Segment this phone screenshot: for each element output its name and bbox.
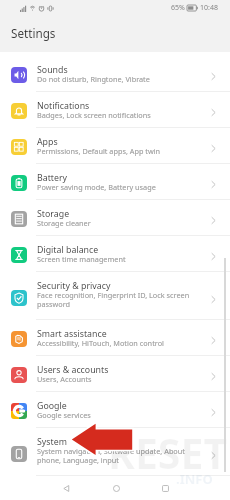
staticText: RESET — [108, 425, 228, 481]
staticText: Smart assistance — [37, 328, 107, 340]
button[interactable]: Back — [56, 478, 76, 498]
staticText: .INFO — [176, 470, 213, 488]
staticText: Notifications — [37, 100, 90, 112]
staticText: Do not disturb, Ringtone, Vibrate — [37, 74, 150, 84]
button[interactable]: Smart assistance — [0, 320, 230, 356]
button[interactable]: Home — [106, 478, 126, 498]
staticText: Security & privacy — [37, 280, 111, 292]
button[interactable]: Sounds — [0, 56, 230, 92]
staticText: 65% — [171, 3, 185, 13]
button[interactable]: Storage — [0, 200, 230, 236]
staticText: Screen time management — [37, 254, 126, 264]
button[interactable]: Security & privacy — [0, 272, 230, 320]
staticText: Accessibility, HiTouch, Motion control — [37, 338, 164, 348]
staticText: 10:48 — [200, 3, 218, 13]
staticText: Apps — [37, 136, 58, 148]
staticText: Users, Accounts — [37, 374, 92, 384]
staticText: Storage — [37, 208, 70, 220]
button[interactable]: Apps — [0, 128, 230, 164]
staticText: Settings — [11, 25, 56, 41]
staticText: Permissions, Default apps, App twin — [37, 146, 161, 156]
button[interactable]: Recents — [155, 478, 175, 498]
staticText: Digital balance — [37, 244, 99, 256]
button[interactable]: Digital balance — [0, 236, 230, 272]
staticText: Face recognition, Fingerprint ID, Lock s… — [37, 290, 206, 310]
staticText: System navigation, Software update, Abou… — [37, 446, 206, 466]
staticText: Google services — [37, 410, 91, 420]
button[interactable]: Google — [0, 392, 230, 428]
staticText: Battery — [37, 172, 68, 184]
button[interactable]: Users & accounts — [0, 356, 230, 392]
staticText: Storage cleaner — [37, 218, 91, 228]
staticText: Google — [37, 400, 67, 412]
staticText: Users & accounts — [37, 364, 109, 376]
button[interactable]: Notifications — [0, 92, 230, 128]
staticText: Badges, Lock screen notifications — [37, 110, 151, 120]
staticText: System — [37, 436, 67, 448]
staticText: Sounds — [37, 64, 68, 76]
button[interactable]: Battery — [0, 164, 230, 200]
button[interactable]: System — [0, 428, 230, 476]
staticText: Power saving mode, Battery usage — [37, 182, 156, 192]
